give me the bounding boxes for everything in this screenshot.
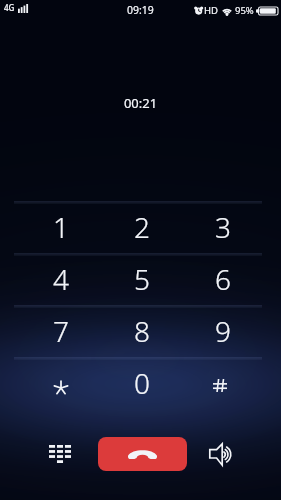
staticText: 00:21 bbox=[0, 94, 281, 112]
staticText: 1 bbox=[53, 208, 69, 246]
staticText: 09:19 bbox=[127, 3, 154, 17]
button[interactable]: 1 bbox=[21, 201, 101, 253]
staticText: 7 bbox=[53, 312, 69, 350]
staticText: 4G bbox=[4, 2, 15, 13]
button[interactable]: 9 bbox=[182, 305, 263, 357]
staticText: 95% bbox=[235, 4, 254, 17]
button[interactable]: 6 bbox=[182, 253, 263, 305]
button[interactable]: 0 bbox=[101, 357, 182, 409]
staticText: 6 bbox=[215, 260, 231, 298]
button[interactable]: 5 bbox=[101, 253, 182, 305]
staticText: 2 bbox=[134, 208, 150, 246]
staticText: 3 bbox=[215, 208, 231, 246]
button[interactable]: Show dialpad bbox=[11, 430, 109, 478]
button[interactable]: Speaker bbox=[179, 430, 262, 478]
button[interactable]: 3 bbox=[182, 201, 263, 253]
button[interactable]: 2 bbox=[101, 201, 182, 253]
button[interactable]: * bbox=[21, 357, 101, 409]
button[interactable]: # bbox=[182, 357, 263, 409]
button[interactable]: 8 bbox=[101, 305, 182, 357]
staticText: 9 bbox=[215, 312, 231, 350]
staticText: 4 bbox=[53, 260, 69, 298]
button[interactable]: End call bbox=[98, 437, 187, 471]
staticText: 0 bbox=[134, 364, 150, 402]
button[interactable]: 4 bbox=[21, 253, 101, 305]
staticText: 5 bbox=[134, 260, 150, 298]
staticText: HD bbox=[204, 4, 218, 17]
button[interactable]: 7 bbox=[21, 305, 101, 357]
staticText: 8 bbox=[134, 312, 150, 350]
